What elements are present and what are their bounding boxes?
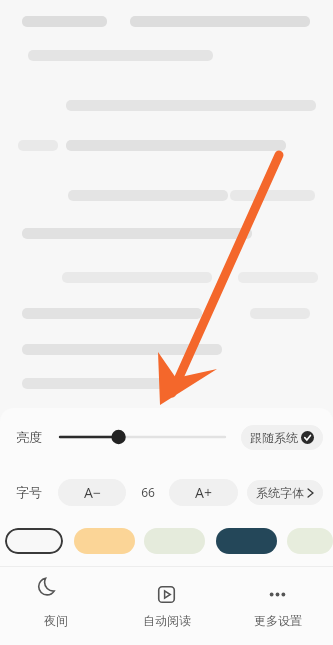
button[interactable]: 自动阅读 [111, 567, 222, 645]
staticText: 66 [141, 484, 155, 500]
button[interactable]: 深蓝背景 [216, 528, 277, 554]
button[interactable] [60, 423, 227, 451]
button[interactable]: 白色背景 [5, 528, 63, 554]
staticText: A+ [195, 483, 212, 502]
staticText: 夜间 [44, 613, 68, 628]
staticText: 跟随系统 [250, 430, 298, 445]
staticText: 系统字体 [256, 485, 304, 500]
button[interactable]: 夜间 [0, 567, 111, 645]
staticText: 亮度 [16, 429, 42, 445]
button[interactable]: A+ [169, 479, 238, 506]
staticText: 自动阅读 [143, 613, 191, 628]
button[interactable]: 米黄背景 [74, 528, 135, 554]
staticText: A− [84, 483, 101, 502]
staticText: 字号 [16, 484, 42, 500]
staticText: 更多设置 [254, 613, 302, 628]
button[interactable]: 浅绿背景 [144, 528, 205, 554]
button[interactable]: 跟随系统 [241, 425, 323, 450]
button[interactable]: 护眼背景 [287, 528, 333, 554]
button[interactable]: 系统字体 [247, 480, 323, 505]
button[interactable]: A− [58, 479, 126, 506]
button[interactable]: 更多设置 [222, 567, 333, 645]
